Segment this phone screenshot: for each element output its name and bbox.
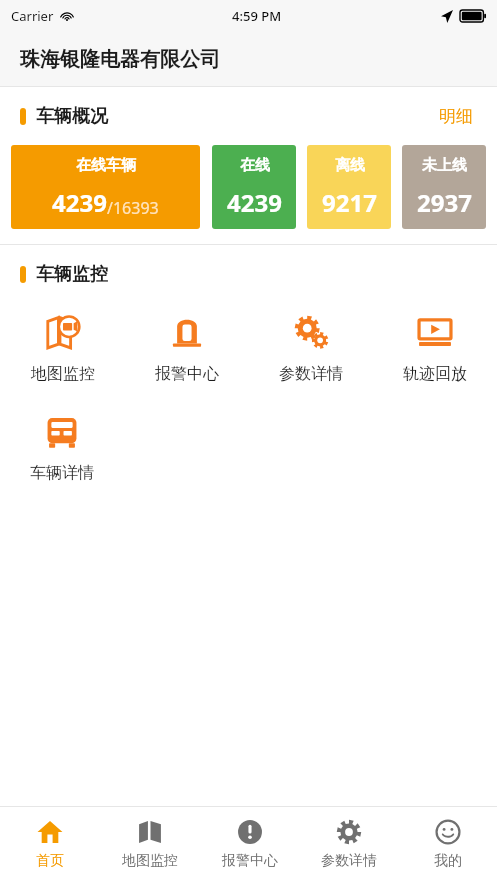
- staticText: 报警中心: [222, 852, 278, 870]
- button[interactable]: 报警中心: [125, 303, 249, 394]
- staticText: 参数详情: [321, 852, 377, 870]
- button[interactable]: 在线: [212, 145, 296, 229]
- button[interactable]: 参数详情: [299, 807, 398, 883]
- staticText: 参数详情: [279, 364, 343, 384]
- staticText: 首页: [36, 852, 64, 870]
- staticText: 车辆详情: [30, 463, 94, 483]
- staticText: 珠海银隆电器有限公司: [20, 47, 220, 72]
- staticText: 离线: [335, 156, 365, 175]
- button[interactable]: 明细: [435, 102, 477, 131]
- button[interactable]: 未上线: [402, 145, 486, 229]
- staticText: 轨迹回放: [403, 364, 467, 384]
- button[interactable]: 参数详情: [249, 303, 373, 394]
- staticText: 报警中心: [155, 364, 219, 384]
- staticText: 4239: [227, 186, 282, 219]
- button[interactable]: 地图监控: [100, 807, 200, 883]
- button[interactable]: 报警中心: [200, 807, 299, 883]
- staticText: Carrier: [11, 7, 54, 25]
- button[interactable]: 我的: [398, 807, 497, 883]
- button[interactable]: 首页: [0, 807, 100, 883]
- staticText: 9217: [322, 186, 377, 219]
- button[interactable]: 轨迹回放: [373, 303, 497, 394]
- staticText: /16393: [107, 197, 159, 219]
- button[interactable]: 离线: [307, 145, 391, 229]
- button[interactable]: 车辆详情: [0, 402, 124, 493]
- staticText: 明细: [439, 106, 473, 127]
- staticText: 车辆监控: [36, 263, 108, 286]
- staticText: 在线: [240, 156, 270, 175]
- staticText: 4239: [52, 186, 107, 219]
- button[interactable]: 在线车辆: [11, 145, 200, 229]
- staticText: 4:59 PM: [232, 7, 282, 25]
- button[interactable]: 地图监控: [0, 303, 125, 394]
- staticText: 2937: [417, 186, 472, 219]
- staticText: 地图监控: [122, 852, 178, 870]
- staticText: 地图监控: [31, 364, 95, 384]
- staticText: 在线车辆: [76, 156, 136, 175]
- staticText: 我的: [434, 852, 462, 870]
- staticText: 车辆概况: [36, 105, 108, 128]
- staticText: 未上线: [422, 156, 467, 175]
